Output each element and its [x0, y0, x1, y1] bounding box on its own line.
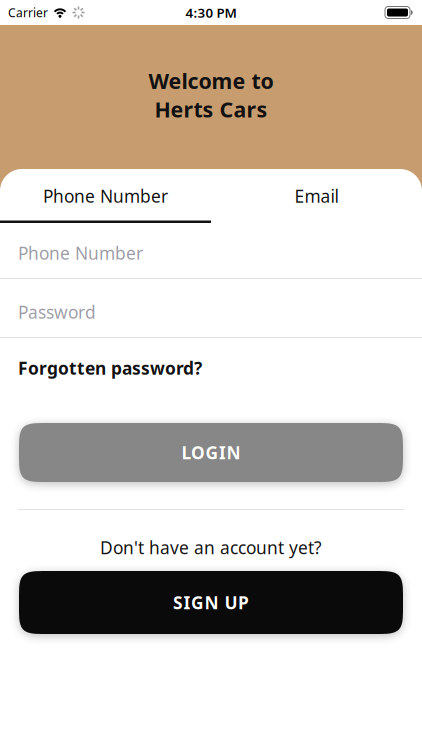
staticText: Password — [18, 300, 96, 323]
button[interactable]: Phone Number — [0, 169, 211, 223]
button[interactable]: Email — [211, 169, 422, 223]
staticText: Welcome to — [148, 67, 273, 95]
staticText: Phone Number — [43, 184, 168, 207]
button[interactable]: Forgotten password? — [18, 356, 202, 379]
button[interactable]: LOGIN — [19, 423, 403, 482]
staticText: Phone Number — [18, 241, 143, 264]
button[interactable]: SIGN UP — [19, 571, 403, 634]
staticText: SIGN UP — [173, 591, 249, 614]
staticText: Don't have an account yet? — [100, 536, 322, 559]
staticText: Forgotten password? — [18, 356, 202, 379]
staticText: Carrier — [8, 4, 48, 20]
staticText: Email — [294, 184, 338, 207]
staticText: LOGIN — [181, 441, 240, 464]
staticText: 4:30 PM — [185, 4, 236, 21]
staticText: Herts Cars — [154, 95, 267, 123]
